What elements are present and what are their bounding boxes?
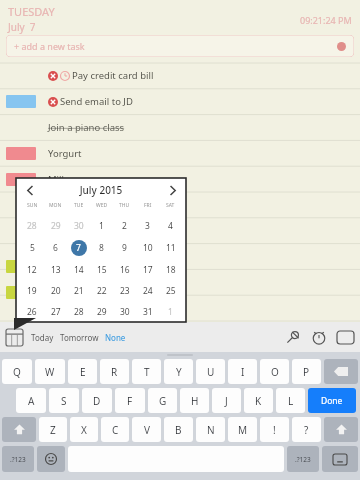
button[interactable]: 29 [44, 215, 67, 237]
button[interactable]: 1 [159, 301, 182, 322]
button[interactable]: P [292, 359, 321, 384]
button[interactable]: 28 [20, 215, 44, 237]
button[interactable]: Today [31, 332, 54, 343]
button[interactable]: V [132, 417, 161, 442]
button[interactable]: B [164, 417, 193, 442]
button[interactable]: 10 [136, 237, 159, 259]
button[interactable]: O [260, 359, 289, 384]
button[interactable]: 26 [20, 301, 44, 322]
button[interactable]: L [276, 388, 305, 413]
button[interactable]: Q [2, 359, 32, 384]
button[interactable]: + add a new task [6, 35, 354, 57]
button[interactable]: Hide keyboard [322, 446, 358, 472]
button[interactable]: 14 [67, 259, 90, 280]
button[interactable]: 25 [159, 280, 182, 301]
button[interactable]: None [105, 332, 126, 343]
button[interactable]: 30 [67, 215, 90, 237]
staticText: Yorgurt [48, 147, 82, 160]
button[interactable]: 29 [90, 301, 113, 322]
staticText: Today [31, 332, 54, 343]
button[interactable]: 24 [136, 280, 159, 301]
button[interactable]: Next month [162, 180, 182, 200]
button[interactable]: 17 [136, 259, 159, 280]
button[interactable]: J [212, 388, 241, 413]
button[interactable]: Delete [324, 359, 358, 384]
button[interactable]: ! [260, 417, 289, 442]
button[interactable]: 23 [113, 280, 136, 301]
button[interactable]: K [244, 388, 273, 413]
button[interactable]: 15 [90, 259, 113, 280]
button[interactable]: Y [164, 359, 193, 384]
button[interactable]: C [101, 417, 129, 442]
button[interactable]: W [35, 359, 65, 384]
other: Reminder [60, 71, 70, 81]
button[interactable]: .?123 [287, 446, 319, 472]
button[interactable]: U [196, 359, 225, 384]
button[interactable]: 19 [20, 280, 44, 301]
button[interactable]: 30 [113, 301, 136, 322]
button[interactable]: 22 [90, 280, 113, 301]
button[interactable]: Shift [324, 417, 358, 442]
staticText: 09:21:24 PM [300, 14, 352, 26]
button[interactable]: ? [292, 417, 321, 442]
button[interactable]: Z [39, 417, 67, 442]
button[interactable]: Pin [285, 329, 301, 345]
button[interactable]: I [228, 359, 257, 384]
button[interactable]: Calendar [6, 329, 23, 346]
button[interactable]: 6 [44, 237, 67, 259]
staticText: MON [49, 202, 62, 209]
button[interactable]: Clear [337, 42, 346, 51]
button[interactable]: D [82, 388, 112, 413]
staticText: J [225, 394, 228, 408]
button[interactable]: Done [308, 388, 356, 413]
button[interactable]: Yorgurt [0, 141, 360, 166]
button[interactable]: H [180, 388, 209, 413]
button[interactable]: Note [337, 331, 354, 344]
button[interactable]: 7 [67, 237, 90, 259]
button[interactable]: 2 [113, 215, 136, 237]
button[interactable]: 21 [67, 280, 90, 301]
button[interactable]: T [132, 359, 161, 384]
button[interactable]: Emoji [37, 446, 65, 472]
button[interactable]: 31 [136, 301, 159, 322]
button[interactable]: N [196, 417, 225, 442]
staticText: None [105, 332, 126, 343]
button[interactable]: G [148, 388, 177, 413]
button[interactable]: 9 [113, 237, 136, 259]
button[interactable]: 1 [90, 215, 113, 237]
button[interactable]: Previous month [20, 180, 40, 200]
button[interactable]: R [100, 359, 129, 384]
button[interactable]: Delete [0, 63, 360, 88]
button[interactable]: 28 [67, 301, 90, 322]
button[interactable]: A [16, 388, 46, 413]
button[interactable]: Delete [0, 89, 360, 114]
button[interactable]: E [68, 359, 97, 384]
staticText: G [159, 394, 167, 408]
staticText: U [207, 365, 215, 379]
other: Delete [48, 97, 58, 107]
button[interactable]: M [228, 417, 257, 442]
button[interactable]: 8 [90, 237, 113, 259]
button[interactable]: F [115, 388, 145, 413]
button[interactable]: 4 [159, 215, 182, 237]
button[interactable]: .?123 [2, 446, 34, 472]
button[interactable]: 13 [44, 259, 67, 280]
staticText: .?123 [295, 455, 311, 464]
button[interactable]: 27 [44, 301, 67, 322]
button[interactable]: Alarm [311, 329, 327, 345]
button[interactable]: 18 [159, 259, 182, 280]
staticText: P [303, 365, 310, 379]
button[interactable]: 16 [113, 259, 136, 280]
button[interactable]: 11 [159, 237, 182, 259]
button[interactable]: 3 [136, 215, 159, 237]
button[interactable]: 12 [20, 259, 44, 280]
button[interactable]: S [49, 388, 79, 413]
button[interactable]: 5 [20, 237, 44, 259]
button[interactable]: Milk [0, 167, 360, 192]
button[interactable]: Shift [2, 417, 36, 442]
button[interactable]: Join a piano class [0, 115, 360, 140]
button[interactable]: X [70, 417, 98, 442]
button[interactable]: Tomorrow [60, 332, 99, 343]
button[interactable]: 20 [44, 280, 67, 301]
